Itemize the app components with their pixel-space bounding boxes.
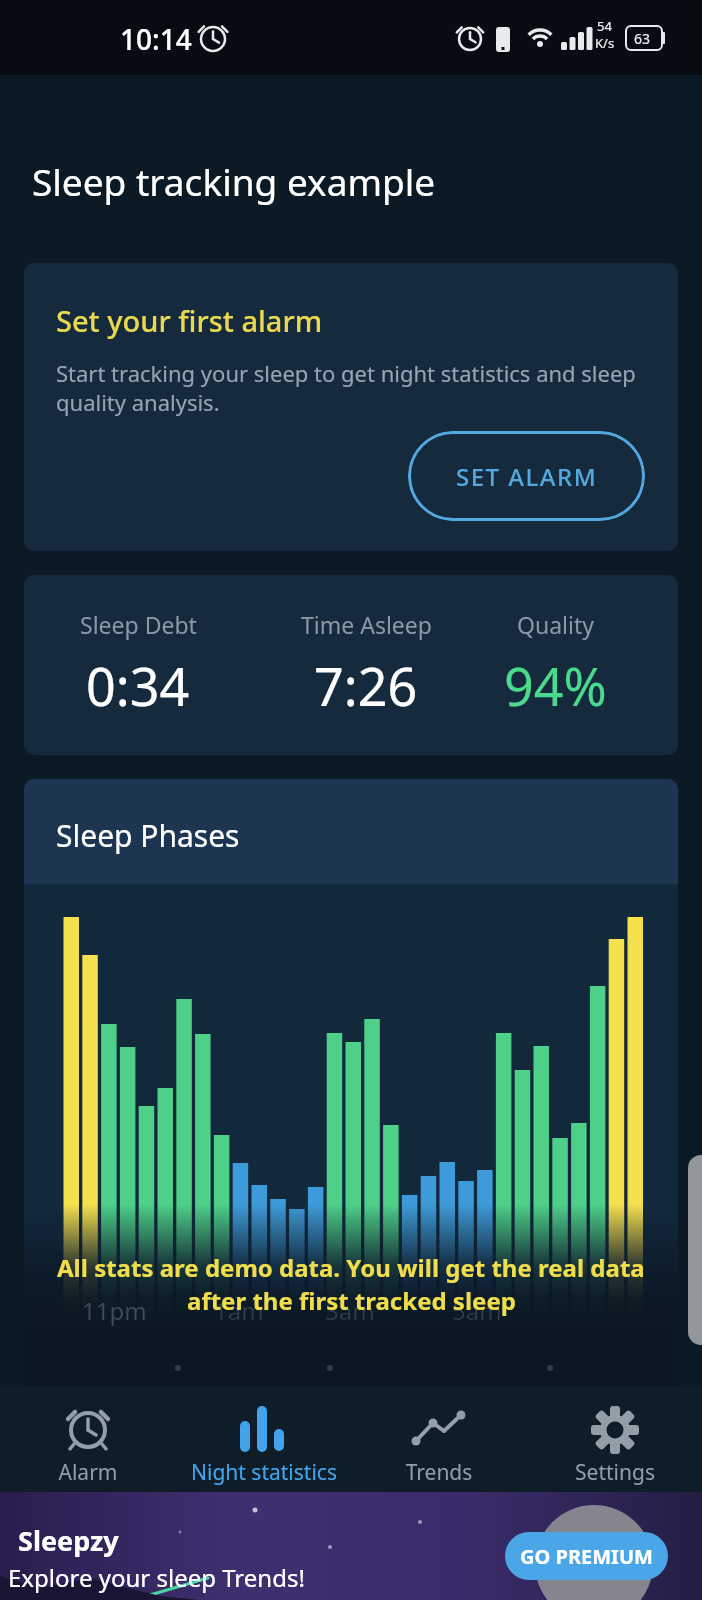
button[interactable]: Trends (351, 1386, 527, 1492)
button[interactable]: Settings (527, 1386, 702, 1492)
staticText: Settings (527, 1458, 702, 1487)
staticText: after the first tracked sleep (187, 1284, 516, 1317)
staticText: Start tracking your sleep to get night s… (56, 358, 636, 417)
staticText: GO PREMIUM (520, 1543, 653, 1570)
staticText: Alarm (0, 1458, 176, 1487)
button[interactable]: GO PREMIUM (505, 1532, 668, 1580)
staticText: Night statistics (176, 1458, 352, 1487)
staticText: Sleep tracking example (32, 156, 436, 206)
button[interactable]: SET ALARM (408, 431, 645, 521)
staticText: Sleep Debt (80, 609, 197, 640)
button[interactable]: Alarm (0, 1386, 176, 1492)
staticText: Time Asleep (301, 609, 432, 640)
staticText: Set your first alarm (56, 301, 323, 340)
staticText: SET ALARM (456, 460, 598, 493)
staticText: All stats are demo data. You will get th… (57, 1251, 645, 1284)
staticText: Trends (351, 1458, 527, 1487)
staticText: Sleep Phases (56, 815, 240, 856)
staticText: 0:34 (86, 650, 190, 721)
staticText: K/s (595, 34, 615, 52)
staticText: 94% (504, 650, 607, 721)
staticText: 7:26 (314, 650, 418, 721)
button[interactable]: Night statistics (176, 1386, 352, 1492)
staticText: 3am (325, 1294, 375, 1327)
button[interactable]: Sleepzy (0, 1492, 702, 1600)
staticText: 1am (214, 1294, 264, 1327)
staticText: 63 (634, 29, 651, 48)
staticText: Quality (517, 609, 594, 640)
staticText: Explore your sleep Trends! (8, 1561, 305, 1594)
staticText: 5am (452, 1294, 502, 1327)
staticText: 10:14 (120, 20, 192, 58)
staticText: Sleepzy (18, 1522, 119, 1559)
staticText: 54 (597, 17, 612, 35)
staticText: 11pm (82, 1294, 147, 1327)
